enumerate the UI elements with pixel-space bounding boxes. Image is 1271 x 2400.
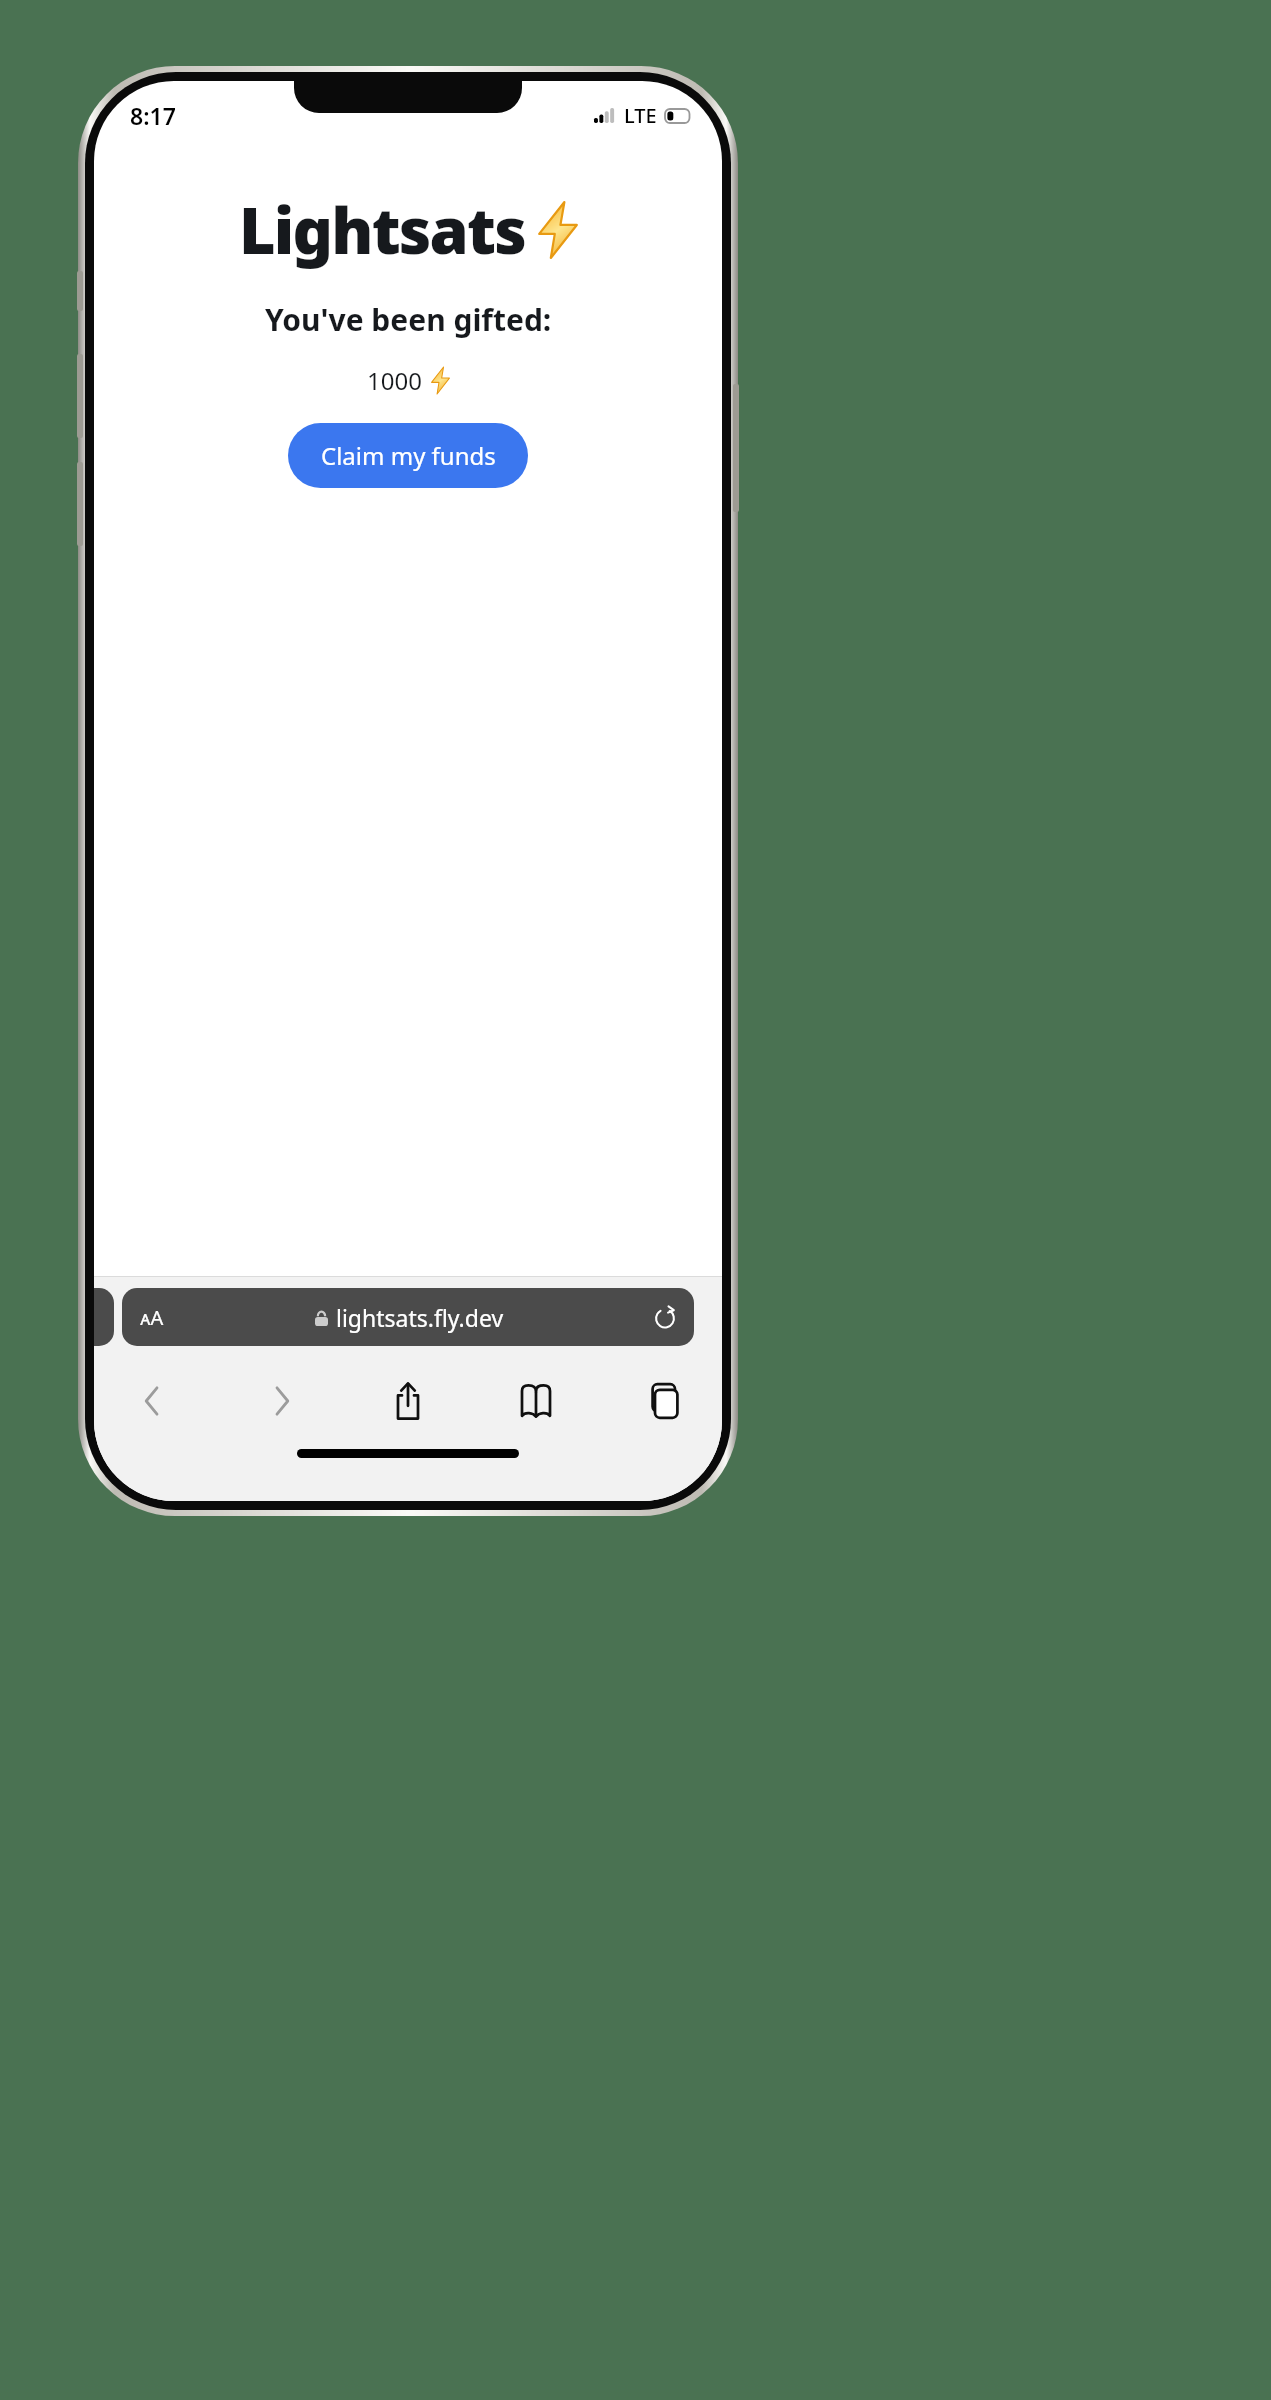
staticText: lightsats.fly.dev	[336, 1302, 504, 1333]
button[interactable]: Share	[369, 1362, 447, 1440]
staticText: Lightsats	[239, 187, 526, 273]
button[interactable]: Bookmarks	[497, 1362, 575, 1440]
staticText: Claim my funds	[321, 439, 496, 472]
staticText: 1000	[367, 364, 422, 397]
staticText: ᴀA	[140, 1304, 164, 1331]
staticText: 8:17	[130, 100, 176, 131]
button[interactable]: Previous tab	[94, 1288, 114, 1346]
button[interactable]: Back	[114, 1362, 192, 1440]
staticText: LTE	[624, 102, 657, 129]
other: Reload	[654, 1306, 676, 1328]
button[interactable]: ᴀA	[122, 1288, 694, 1346]
button[interactable]: Tabs	[624, 1362, 702, 1440]
button[interactable]: Forward	[242, 1362, 320, 1440]
button[interactable]: Claim my funds	[288, 423, 528, 488]
staticText: You've been gifted:	[265, 299, 552, 340]
